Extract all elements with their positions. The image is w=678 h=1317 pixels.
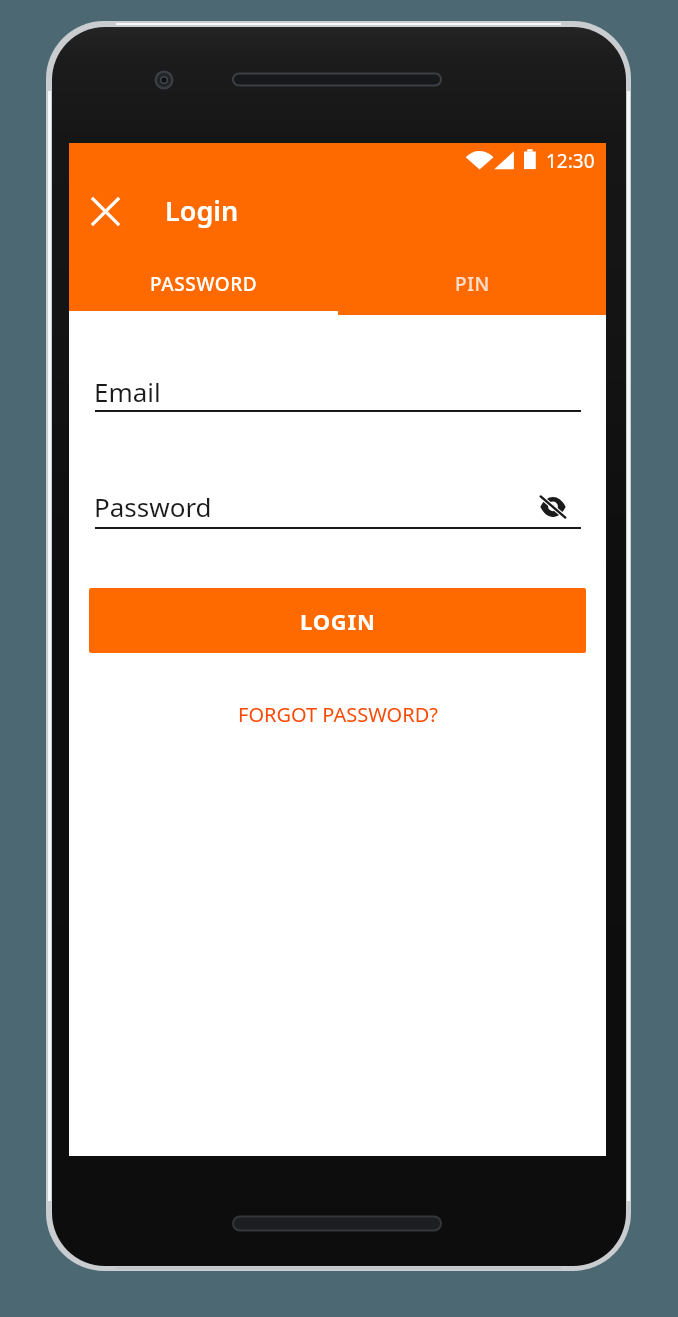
button[interactable]: FORGOT PASSWORD? (208, 691, 468, 737)
button[interactable]: Close (81, 187, 130, 236)
staticText: PIN (455, 271, 490, 297)
staticText: PASSWORD (150, 271, 258, 297)
button[interactable] (69, 250, 606, 315)
button[interactable]: PIN (338, 250, 607, 315)
staticText: LOGIN (300, 606, 376, 636)
staticText: FORGOT PASSWORD? (238, 701, 438, 728)
staticText: Email (94, 374, 161, 409)
staticText: Password (94, 489, 212, 524)
staticText: 12:30 (546, 148, 595, 174)
staticText: Login (165, 192, 239, 229)
button[interactable]: LOGIN (89, 588, 586, 653)
button[interactable]: PASSWORD (69, 250, 338, 315)
button[interactable]: Show password (529, 483, 577, 531)
